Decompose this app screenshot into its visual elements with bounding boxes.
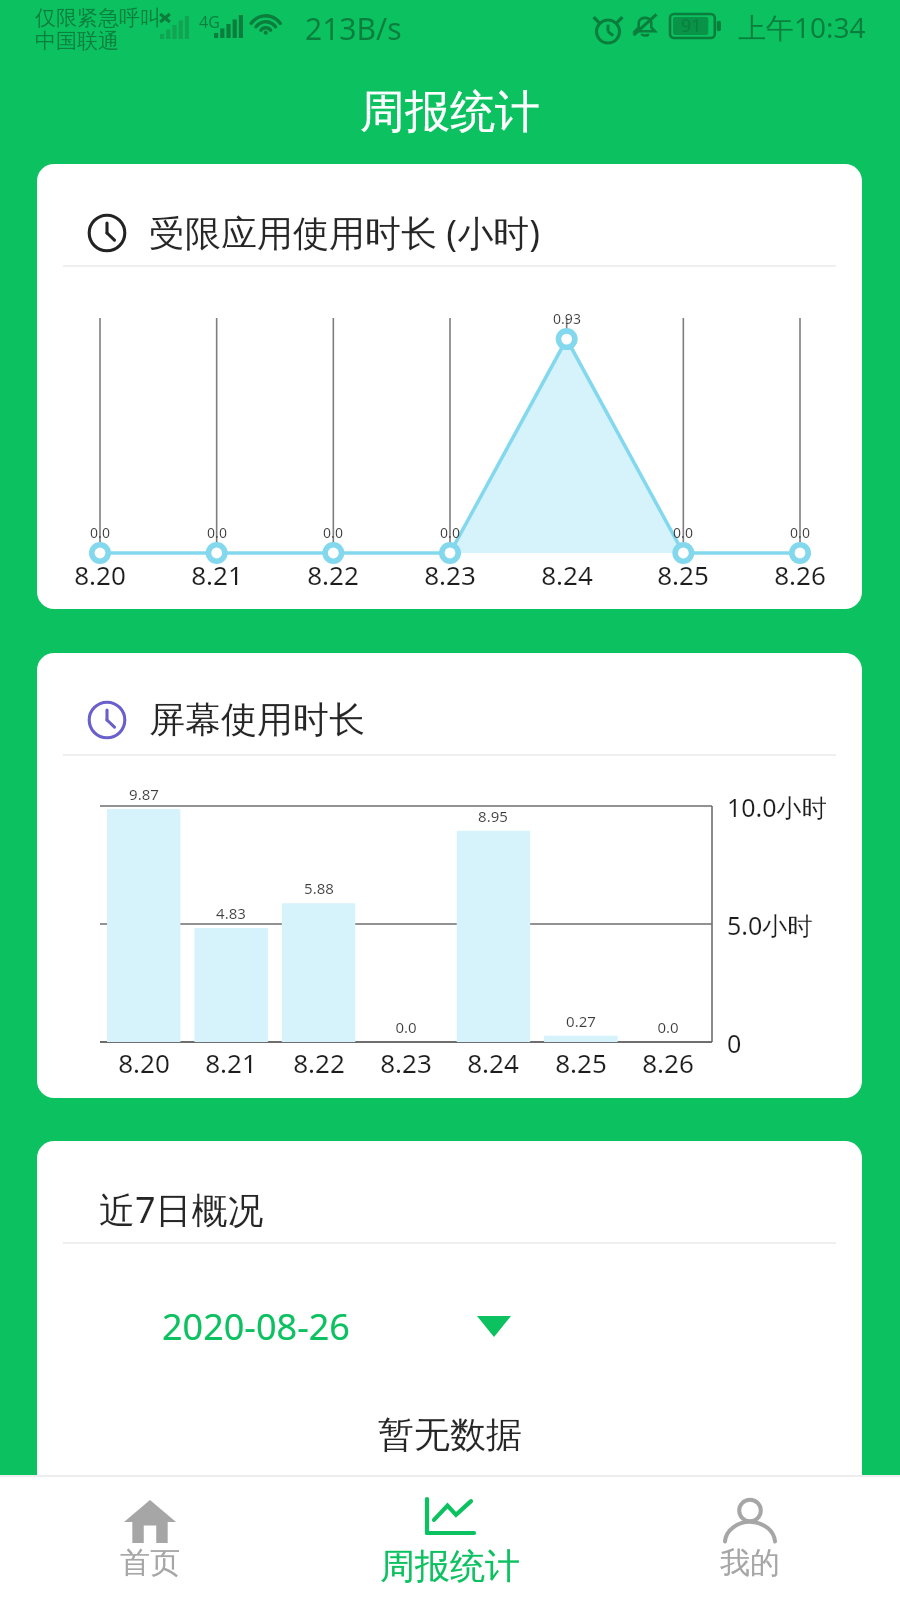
staticText: 5.88: [304, 878, 334, 898]
other: Notifications off: [632, 13, 658, 37]
staticText: 近7日概况: [99, 1185, 264, 1234]
staticText: 8.20: [74, 557, 126, 592]
staticText: 0.0: [90, 523, 110, 542]
staticText: 0.0: [207, 523, 227, 542]
staticText: 周报统计: [360, 84, 540, 141]
staticText: 4.83: [216, 903, 246, 923]
staticText: 0.0: [395, 1017, 417, 1037]
staticText: 8.24: [541, 557, 593, 592]
staticText: 91: [681, 13, 702, 37]
button[interactable]: 我的: [600, 1477, 900, 1600]
staticText: 仅限紧急呼叫: [35, 5, 161, 31]
staticText: 8.22: [307, 557, 359, 592]
staticText: 8.23: [424, 557, 476, 592]
staticText: 暂无数据: [378, 1412, 522, 1457]
staticText: 8.21: [205, 1045, 257, 1080]
button[interactable]: 首页: [0, 1477, 300, 1600]
staticText: 0.0: [790, 523, 810, 542]
staticText: 0.0: [323, 523, 343, 542]
staticText: 首页: [120, 1544, 180, 1582]
staticText: 中国联通: [35, 28, 119, 54]
staticText: 4G: [199, 11, 220, 33]
staticText: 213B/s: [305, 8, 402, 49]
staticText: 8.23: [380, 1045, 432, 1080]
staticText: 8.26: [774, 557, 826, 592]
other: Alarm: [592, 13, 624, 45]
staticText: 0.0: [440, 523, 460, 542]
staticText: 8.22: [293, 1045, 345, 1080]
staticText: 8.24: [467, 1045, 519, 1080]
staticText: 0.27: [566, 1011, 596, 1031]
staticText: 周报统计: [380, 1544, 520, 1588]
staticText: 8.25: [657, 557, 709, 592]
staticText: 0.93: [553, 309, 581, 328]
staticText: 8.26: [642, 1045, 694, 1080]
staticText: 0: [727, 1026, 742, 1060]
button[interactable]: 2020-08-26: [162, 1244, 862, 1408]
staticText: 8.25: [555, 1045, 607, 1080]
staticText: 上午10:34: [738, 8, 866, 46]
staticText: 8.95: [478, 806, 508, 826]
button[interactable]: 周报统计: [300, 1477, 600, 1600]
staticText: 我的: [720, 1544, 780, 1582]
staticText: 0.0: [673, 523, 693, 542]
staticText: 受限应用使用时长 (小时): [149, 208, 540, 257]
staticText: 8.20: [118, 1045, 170, 1080]
staticText: 8.21: [191, 557, 243, 592]
staticText: 5.0小时: [727, 908, 813, 942]
staticText: 10.0小时: [727, 790, 827, 824]
staticText: 屏幕使用时长: [149, 697, 365, 742]
staticText: 0.0: [657, 1017, 679, 1037]
staticText: 2020-08-26: [162, 1302, 350, 1351]
staticText: 9.87: [129, 784, 159, 804]
